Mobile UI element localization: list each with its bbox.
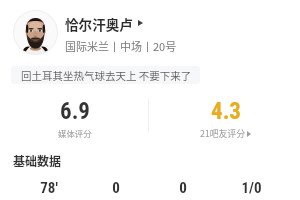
staticText: 国际米兰丨中场丨20号 — [65, 38, 177, 54]
button[interactable]: 4.3 — [160, 98, 290, 146]
button[interactable]: 恰尔汗奥卢 — [65, 14, 143, 32]
staticText: 0 — [179, 179, 187, 197]
staticText: 4.3 — [211, 98, 241, 125]
staticText: 回土耳其坐热气球去天上 不要下来了 — [21, 68, 192, 83]
staticText: 恰尔汗奥卢 — [65, 14, 133, 32]
staticText: 0 — [112, 179, 120, 197]
staticText: 6.9 — [60, 98, 90, 125]
staticText: 基础数据 — [13, 152, 62, 169]
staticText: 1/0 — [241, 179, 262, 197]
button[interactable]: 6.9 — [10, 98, 140, 146]
button[interactable]: 回土耳其坐热气球去天上 不要下来了 — [11, 66, 200, 84]
staticText: 78' — [40, 179, 58, 197]
staticText: 媒体评分 — [58, 127, 92, 139]
staticText: 21吧友评分 — [200, 127, 245, 140]
button[interactable]: Player photo — [13, 10, 58, 55]
